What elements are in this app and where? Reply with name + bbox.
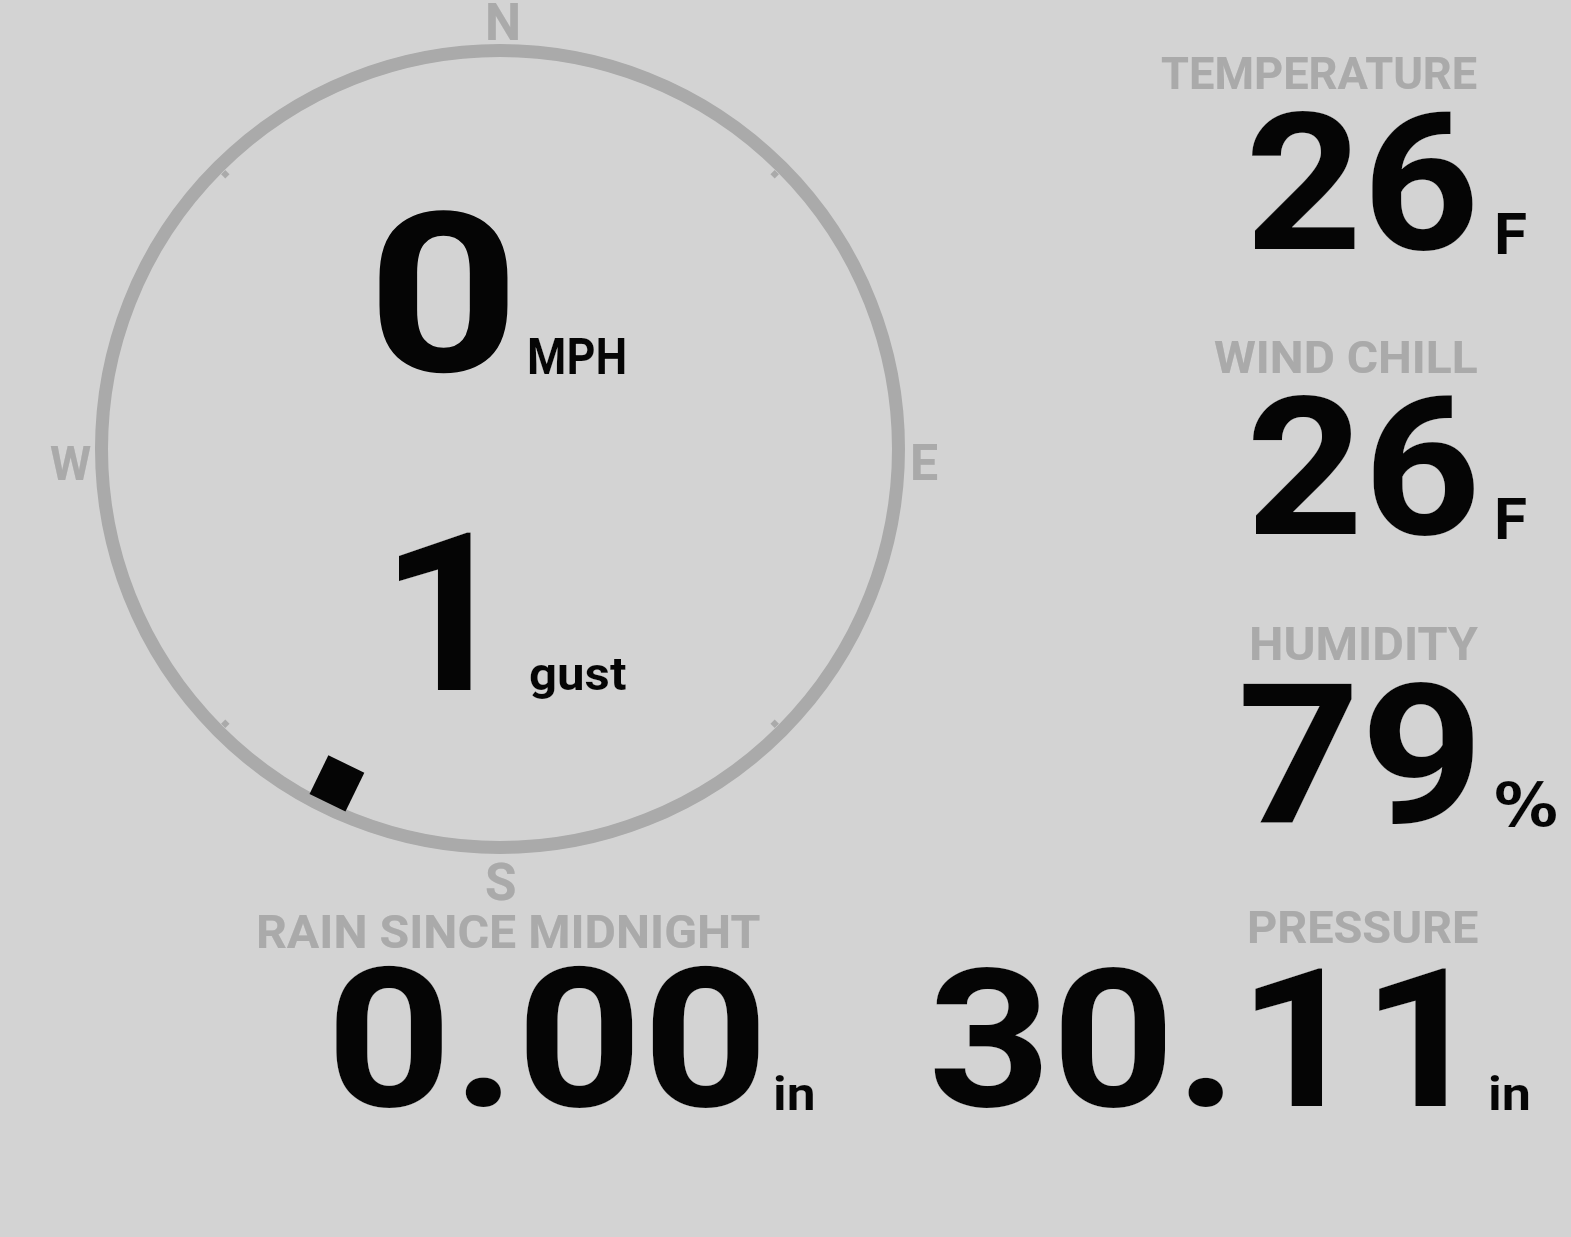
staticText: N (485, 0, 522, 52)
staticText: PRESSURE (1247, 902, 1479, 953)
staticText: 0 (367, 164, 520, 425)
staticText: gust (529, 646, 627, 701)
staticText: MPH (527, 327, 627, 386)
button[interactable]: Temperature 26 degrees Fahrenheit (1140, 40, 1571, 270)
staticText: 0.00 (326, 926, 769, 1153)
button[interactable]: Humidity 79 percent (1140, 610, 1571, 840)
button[interactable]: Pressure 30.11 inches (900, 895, 1550, 1125)
button[interactable]: Rain since midnight 0.00 inches (240, 900, 840, 1125)
staticText: 79 (1237, 643, 1485, 871)
staticText: 1 (380, 485, 513, 744)
staticText: 30.11 (928, 927, 1485, 1153)
staticText: in (773, 1067, 816, 1122)
button[interactable]: Wind chill 26 degrees Fahrenheit (1140, 325, 1571, 555)
staticText: 26 (1245, 71, 1480, 296)
staticText: in (1488, 1067, 1532, 1122)
staticText: F (1494, 485, 1527, 553)
staticText: RAIN SINCE MIDNIGHT (256, 905, 760, 960)
staticText: WIND CHILL (1214, 332, 1478, 384)
staticText: % (1494, 770, 1559, 840)
button[interactable]: Wind 0 miles per hour, gust 1, direction… (100, 50, 900, 850)
staticText: HUMIDITY (1249, 617, 1478, 672)
staticText: F (1494, 200, 1527, 268)
staticText: W (50, 435, 92, 492)
staticText: S (485, 852, 517, 913)
staticText: TEMPERATURE (1161, 48, 1478, 100)
staticText: 26 (1246, 355, 1481, 581)
staticText: E (910, 433, 939, 492)
